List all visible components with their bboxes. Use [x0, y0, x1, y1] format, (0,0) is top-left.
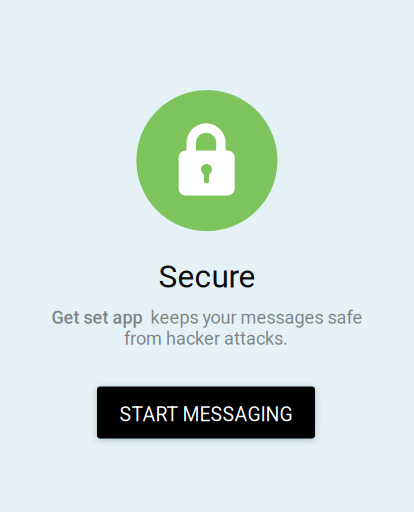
staticText: keeps your messages safe — [142, 307, 362, 328]
staticText: START MESSAGING — [119, 403, 292, 426]
staticText: Secure — [158, 258, 255, 295]
staticText: Get set app — [51, 307, 142, 328]
button[interactable]: START MESSAGING — [97, 386, 315, 438]
staticText: from hacker attacks. — [124, 328, 288, 349]
